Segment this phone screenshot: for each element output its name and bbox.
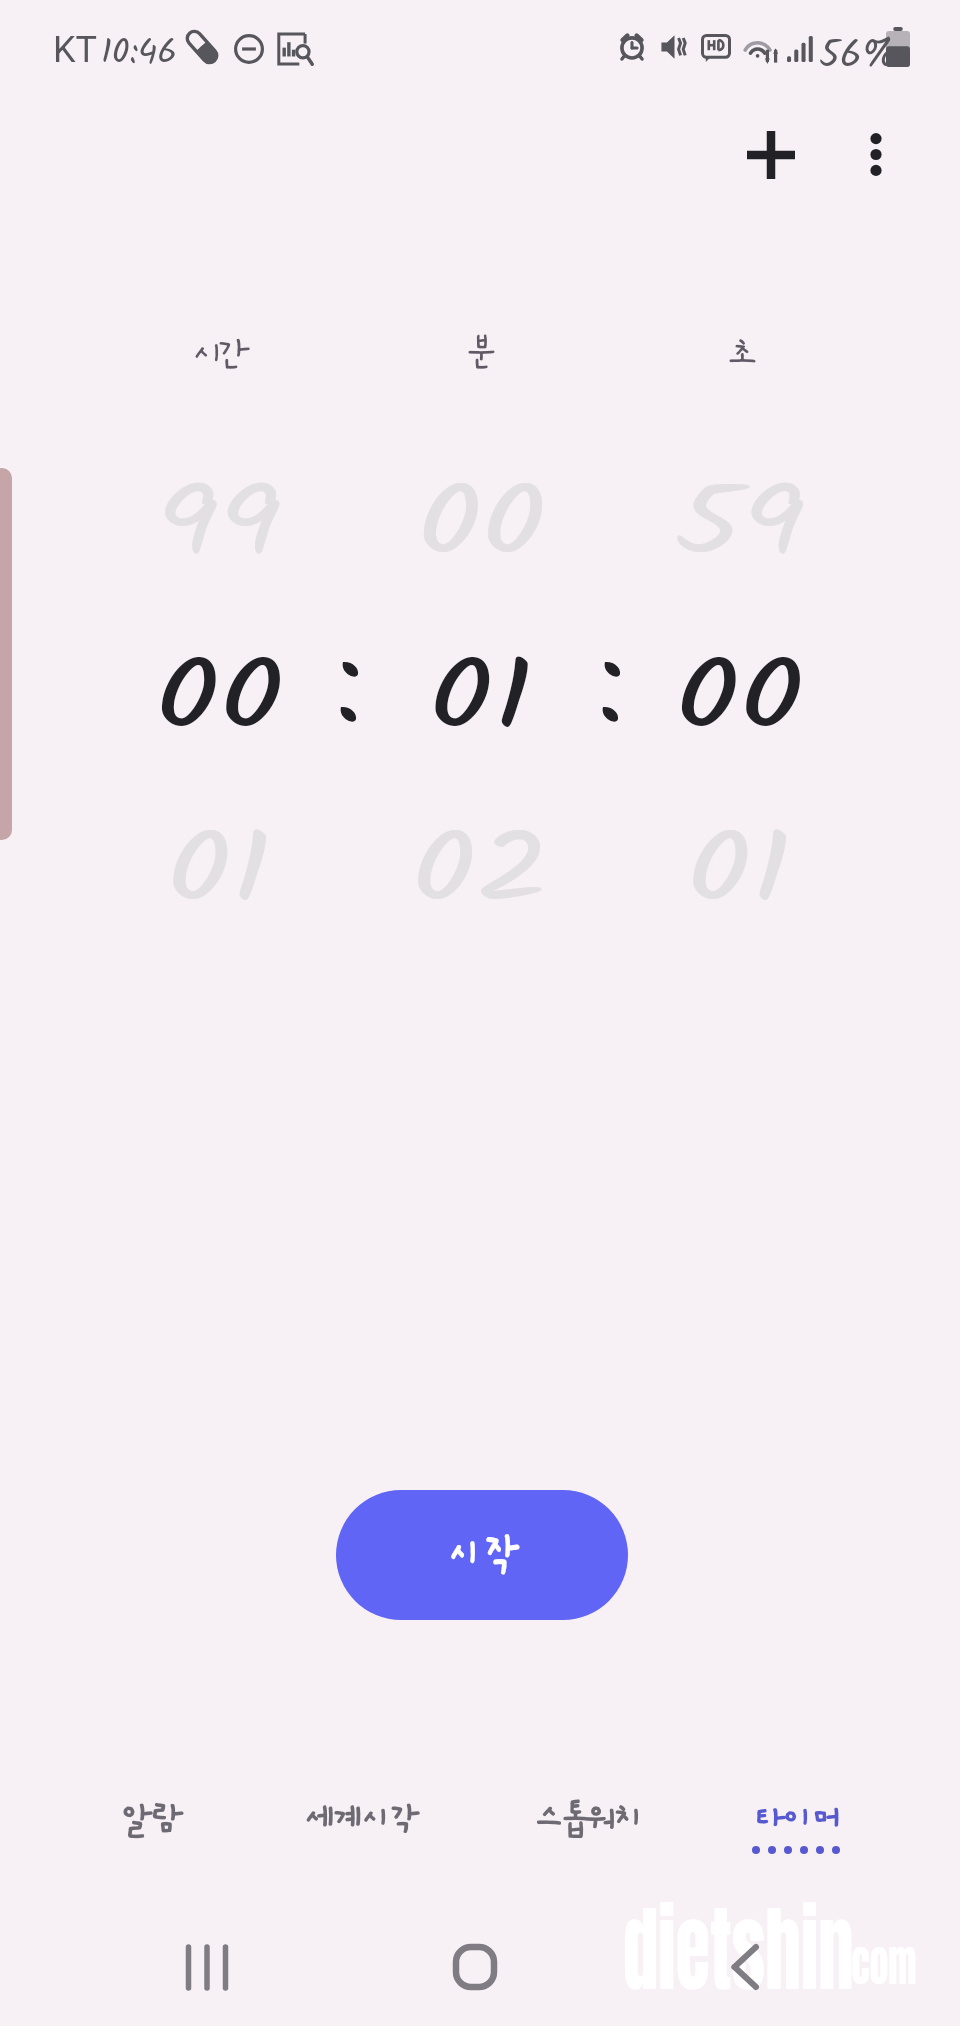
button[interactable]: 01 bbox=[371, 624, 591, 764]
staticText: 00 bbox=[675, 624, 804, 764]
staticText: 타이머 bbox=[753, 1799, 840, 1838]
button[interactable]: 세계시각 bbox=[250, 1799, 470, 1838]
button[interactable]: 타이머 bbox=[686, 1799, 906, 1854]
button[interactable]: 분 bbox=[391, 330, 571, 380]
button[interactable]: 00 bbox=[629, 624, 849, 764]
button[interactable]: Home bbox=[425, 1917, 525, 2017]
button[interactable]: 알람 bbox=[40, 1799, 260, 1838]
staticText: 01 bbox=[167, 797, 271, 907]
staticText: 00 bbox=[417, 450, 546, 560]
button[interactable]: Recents bbox=[157, 1917, 257, 2017]
staticText: 알람 bbox=[120, 1799, 181, 1838]
staticText: 스톱워치 bbox=[533, 1799, 639, 1838]
button[interactable]: Back bbox=[694, 1917, 794, 2017]
button[interactable]: 00 bbox=[109, 624, 329, 764]
staticText: 59 bbox=[673, 450, 806, 560]
staticText: 01 bbox=[687, 797, 791, 907]
staticText: 분 bbox=[464, 334, 499, 376]
staticText: 10:46 bbox=[101, 26, 177, 82]
button[interactable]: 시작 bbox=[336, 1490, 628, 1620]
button[interactable]: More options bbox=[828, 107, 923, 202]
staticText: 01 bbox=[429, 624, 533, 764]
staticText: 시간 bbox=[191, 334, 240, 376]
staticText: KT bbox=[53, 29, 98, 71]
staticText: 시작 bbox=[447, 1529, 518, 1582]
button[interactable]: 스톱워치 bbox=[476, 1799, 696, 1838]
staticText: 세계시각 bbox=[304, 1799, 416, 1838]
staticText: 초 bbox=[725, 334, 760, 376]
button[interactable]: 시간 bbox=[125, 330, 305, 380]
staticText: 56% bbox=[819, 26, 897, 88]
staticText: 02 bbox=[412, 797, 550, 907]
button[interactable]: 초 bbox=[652, 330, 832, 380]
staticText: 99 bbox=[156, 450, 282, 560]
staticText: .com bbox=[843, 1925, 917, 2000]
staticText: 00 bbox=[155, 624, 284, 764]
button[interactable]: Add timer bbox=[723, 107, 818, 202]
staticText: dietshin bbox=[623, 1877, 854, 2020]
